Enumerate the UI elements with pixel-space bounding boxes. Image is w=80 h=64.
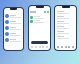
other: Tab — [61, 46, 63, 48]
button[interactable] — [5, 19, 22, 25]
button[interactable] — [30, 19, 50, 23]
button[interactable] — [57, 16, 76, 21]
button[interactable] — [57, 11, 76, 16]
button[interactable] — [30, 15, 50, 19]
button[interactable] — [57, 31, 76, 36]
button[interactable] — [31, 41, 48, 44]
button[interactable] — [5, 37, 22, 43]
other: Tab — [65, 46, 67, 48]
button[interactable] — [57, 21, 76, 26]
other: Tab — [68, 46, 70, 48]
other: Tab — [72, 46, 74, 48]
other: Tab — [57, 46, 59, 48]
button[interactable] — [5, 13, 22, 19]
button[interactable] — [57, 36, 76, 41]
button[interactable] — [5, 25, 22, 31]
button[interactable] — [5, 31, 22, 37]
button[interactable] — [57, 26, 76, 31]
